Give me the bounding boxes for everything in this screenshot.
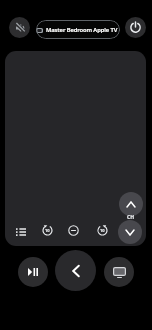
button[interactable]	[125, 17, 146, 38]
staticText: Master Bedroom Apple TV	[46, 26, 118, 34]
staticText: CH	[127, 214, 135, 221]
staticText: 10	[45, 228, 50, 233]
button[interactable]	[104, 257, 134, 287]
button[interactable]	[68, 225, 79, 236]
button[interactable]	[119, 192, 143, 216]
button[interactable]	[118, 220, 142, 244]
button[interactable]: 10	[5, 51, 146, 246]
button[interactable]	[18, 257, 48, 287]
staticText: 10	[100, 228, 105, 233]
button[interactable]: 10	[97, 225, 108, 236]
button[interactable]: Master Bedroom Apple TV	[36, 20, 120, 39]
button[interactable]	[55, 250, 96, 291]
button[interactable]: 10	[42, 225, 53, 236]
button[interactable]	[9, 17, 30, 38]
